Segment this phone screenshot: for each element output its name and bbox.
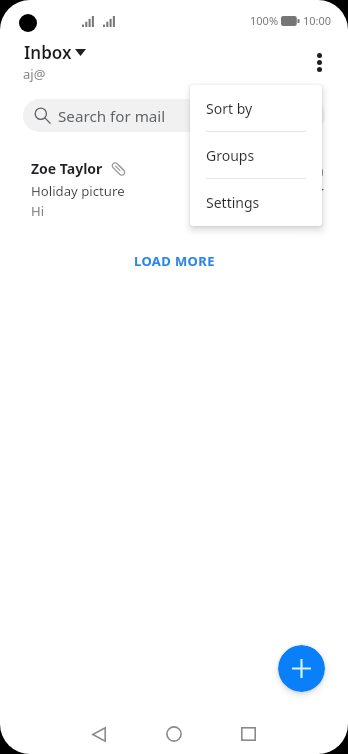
- button[interactable]: Settings: [190, 179, 322, 225]
- staticText: Inbox: [24, 41, 72, 64]
- button[interactable]: LOAD MORE: [118, 247, 231, 275]
- staticText: Sort by: [206, 99, 253, 118]
- button[interactable]: Groups: [190, 132, 322, 178]
- button[interactable]: Home: [154, 714, 194, 754]
- staticText: Holiday picture: [31, 182, 125, 200]
- staticText: Hi: [31, 202, 44, 220]
- staticText: Search for mail: [58, 106, 166, 127]
- staticText: Groups: [206, 146, 255, 165]
- staticText: Zoe Taylor: [31, 159, 103, 178]
- staticText: Settings: [206, 193, 260, 212]
- button[interactable]: More options: [298, 41, 340, 83]
- button[interactable]: Inbox: [24, 41, 86, 64]
- button[interactable]: Back: [79, 714, 119, 754]
- staticText: aj@: [23, 65, 46, 83]
- button[interactable]: Sort by: [190, 85, 322, 131]
- button[interactable]: Recent apps: [228, 714, 268, 754]
- staticText: 100%: [250, 13, 279, 28]
- staticText: 10:00: [303, 13, 332, 28]
- button[interactable]: Compose: [278, 645, 325, 692]
- button[interactable]: Search for mail: [23, 99, 325, 132]
- staticText: LOAD MORE: [134, 252, 215, 270]
- staticText: 10:00: [293, 164, 324, 180]
- button[interactable]: Zoe Taylor: [0, 152, 348, 220]
